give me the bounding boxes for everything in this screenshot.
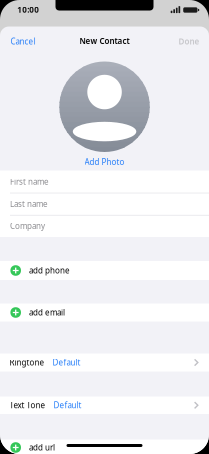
button[interactable]: Cancel <box>0 32 35 51</box>
staticText: New Contact <box>79 36 129 46</box>
staticText: Text Tone <box>9 400 45 410</box>
button[interactable]: Ringtone <box>0 353 209 371</box>
staticText: Company <box>10 221 45 231</box>
button[interactable]: Last name <box>0 193 209 215</box>
staticText: Ringtone <box>9 357 44 368</box>
staticText: First name <box>10 176 49 187</box>
button[interactable]: Done <box>178 32 209 51</box>
button[interactable]: Company <box>0 215 209 237</box>
staticText: Cancel <box>10 36 35 47</box>
staticText: add phone <box>29 265 70 276</box>
button[interactable]: add url <box>0 439 209 454</box>
staticText: Add Photo <box>84 157 124 167</box>
button[interactable]: First name <box>0 170 209 193</box>
button[interactable]: Add Photo <box>84 157 124 167</box>
staticText: Done <box>178 36 199 47</box>
staticText: add email <box>29 307 65 318</box>
staticText: Last name <box>10 198 48 209</box>
button[interactable]: add phone <box>0 261 209 280</box>
button[interactable]: Text Tone <box>0 396 209 414</box>
staticText: Default <box>52 357 80 368</box>
button[interactable]: Add Photo <box>59 61 150 152</box>
staticText: add url <box>29 442 55 453</box>
button[interactable]: add email <box>0 303 209 321</box>
staticText: Default <box>53 400 81 410</box>
staticText: 10:00 <box>17 4 39 15</box>
